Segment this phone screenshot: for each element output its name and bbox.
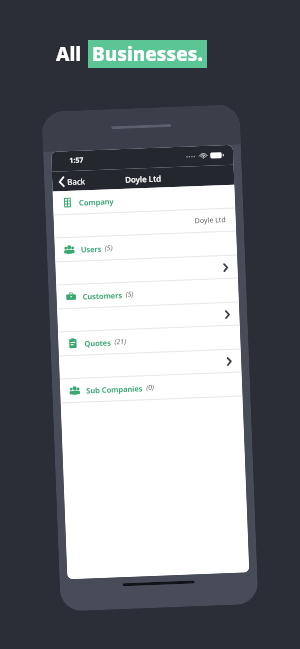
staticText: Users — [81, 244, 102, 255]
button[interactable]: Open list — [59, 349, 242, 378]
button[interactable]: Company — [52, 185, 235, 215]
button[interactable]: Customers — [56, 279, 239, 309]
button[interactable]: Sub Companies — [60, 372, 242, 402]
button[interactable]: Quotes — [58, 325, 241, 355]
button[interactable]: Open list — [55, 256, 238, 285]
staticText: Back — [67, 175, 85, 187]
staticText: Company — [79, 196, 114, 208]
button[interactable]: Open list — [57, 302, 240, 331]
staticText: All — [56, 41, 82, 67]
staticText: Sub Companies — [86, 383, 143, 395]
staticText: (5) — [105, 243, 113, 254]
staticText: (0) — [146, 383, 154, 393]
button[interactable]: Doyle Ltd — [53, 209, 236, 238]
staticText: Businesses. — [92, 41, 203, 67]
button[interactable]: Users — [54, 232, 237, 262]
staticText: (5) — [125, 290, 134, 300]
staticText: Doyle Ltd — [125, 172, 161, 185]
staticText: Customers — [82, 290, 123, 301]
staticText: Doyle Ltd — [195, 215, 226, 226]
staticText: 1:57 — [69, 155, 84, 166]
staticText: (21) — [114, 337, 127, 347]
button[interactable]: Back — [52, 173, 91, 190]
staticText: Quotes — [84, 337, 112, 348]
